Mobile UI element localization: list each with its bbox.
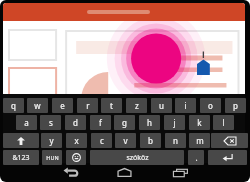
staticText: m <box>196 135 204 146</box>
staticText: c <box>100 135 104 146</box>
button[interactable]: c <box>91 133 112 148</box>
button[interactable]: y <box>41 133 62 148</box>
staticText: j <box>173 117 176 128</box>
button[interactable]: l <box>213 115 234 130</box>
button[interactable]: w <box>27 98 48 113</box>
staticText: &123 <box>12 153 30 163</box>
button[interactable]: Recent apps <box>173 169 188 177</box>
staticText: t <box>110 100 113 111</box>
staticText: a <box>24 117 29 128</box>
staticText: l <box>222 117 225 128</box>
button[interactable]: Backspace <box>211 133 248 148</box>
staticText: i <box>184 100 187 111</box>
button[interactable]: n <box>165 133 186 148</box>
button[interactable]: a <box>16 115 37 130</box>
staticText: e <box>60 100 65 111</box>
staticText: h <box>147 117 152 128</box>
staticText: w <box>34 100 41 111</box>
staticText: z <box>135 100 139 111</box>
button[interactable]: h <box>139 115 160 130</box>
button[interactable]: Back <box>63 166 79 177</box>
button[interactable]: o <box>200 98 221 113</box>
button[interactable]: x <box>66 133 87 148</box>
button[interactable]: k <box>189 115 210 130</box>
staticText: k <box>197 117 202 128</box>
staticText: . <box>195 152 198 163</box>
staticText: y <box>49 135 54 146</box>
button[interactable]: &123 <box>3 150 39 165</box>
staticText: u <box>159 100 164 111</box>
staticText: x <box>74 135 79 146</box>
button[interactable]: u <box>151 98 172 113</box>
staticText: o <box>208 100 213 111</box>
button[interactable]: szóköz <box>90 150 184 165</box>
button[interactable]: j <box>164 115 185 130</box>
button[interactable]: p <box>225 98 246 113</box>
staticText: HUN <box>46 154 59 161</box>
staticText: g <box>122 117 127 128</box>
staticText: n <box>173 135 178 146</box>
button[interactable]: HUN <box>42 150 62 165</box>
staticText: d <box>73 117 78 128</box>
button[interactable]: t <box>101 98 122 113</box>
button[interactable]: . <box>188 150 204 165</box>
button[interactable]: g <box>114 115 135 130</box>
button[interactable]: Shift <box>3 133 39 148</box>
button[interactable]: q <box>3 98 24 113</box>
button[interactable]: e <box>52 98 73 113</box>
staticText: f <box>99 117 102 128</box>
button[interactable]: Enter <box>208 150 247 165</box>
button[interactable] <box>3 3 245 21</box>
staticText: q <box>11 100 16 111</box>
staticText: b <box>148 135 153 146</box>
button[interactable]: b <box>140 133 161 148</box>
button[interactable]: v <box>115 133 136 148</box>
staticText: p <box>233 100 238 111</box>
staticText: v <box>123 135 128 146</box>
button[interactable]: d <box>65 115 86 130</box>
staticText: r <box>86 100 90 111</box>
button[interactable]: z <box>126 98 147 113</box>
button[interactable]: m <box>189 133 210 148</box>
staticText: s <box>49 117 53 128</box>
staticText: szóköz <box>126 153 149 163</box>
button[interactable]: f <box>90 115 111 130</box>
button[interactable]: r <box>77 98 98 113</box>
button[interactable]: s <box>40 115 61 130</box>
button[interactable]: i <box>175 98 196 113</box>
button[interactable]: Emoji <box>66 150 86 165</box>
button[interactable]: Home <box>117 168 132 177</box>
